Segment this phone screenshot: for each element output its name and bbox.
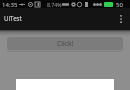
button[interactable]: Click! [7,37,123,50]
staticText: 14:35 [2,1,18,9]
staticText: UiTest [4,14,22,22]
staticText: 50 [116,1,123,9]
staticText: 8.74% [47,1,62,8]
staticText: Click! [57,39,74,48]
button[interactable]: More options [112,8,130,30]
